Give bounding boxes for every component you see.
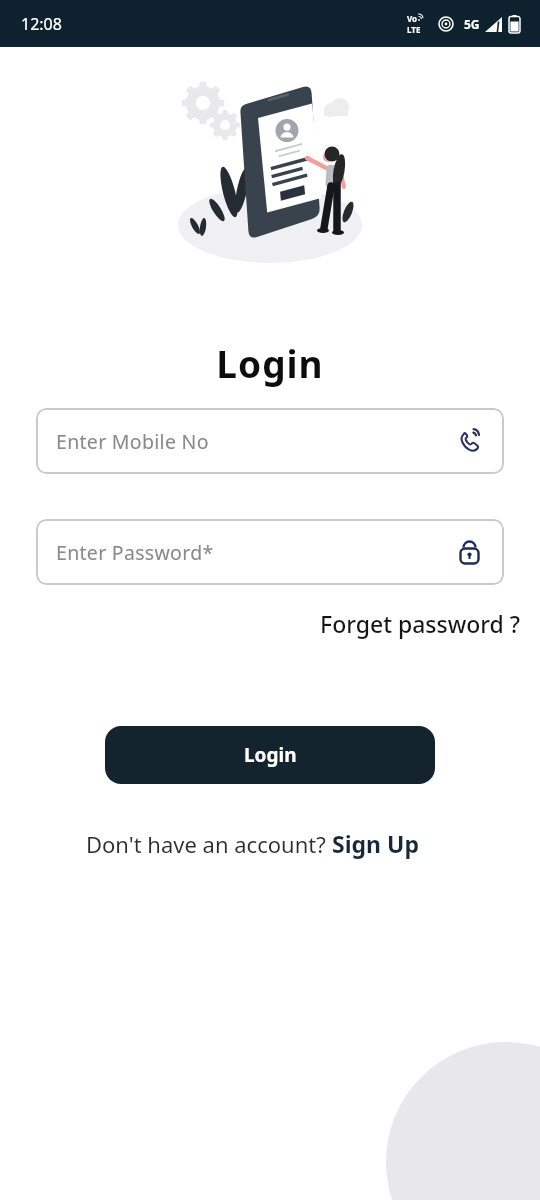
staticText: 12:08 bbox=[21, 13, 62, 35]
staticText: Don't have an account? bbox=[86, 829, 332, 859]
staticText: Vo bbox=[407, 13, 418, 24]
staticText: Login bbox=[244, 742, 297, 768]
staticText: Enter Mobile No bbox=[56, 428, 209, 455]
button[interactable]: Login bbox=[105, 726, 435, 784]
button[interactable]: Forget password ? bbox=[320, 608, 521, 639]
staticText: Enter Password* bbox=[56, 539, 214, 566]
button[interactable]: Enter Password* bbox=[36, 519, 504, 585]
button[interactable]: Sign Up bbox=[332, 828, 419, 859]
staticText: 5G bbox=[464, 16, 480, 32]
button[interactable]: Enter Mobile No bbox=[36, 408, 504, 474]
staticText: LTE bbox=[407, 24, 421, 35]
staticText: Login bbox=[0, 338, 540, 388]
